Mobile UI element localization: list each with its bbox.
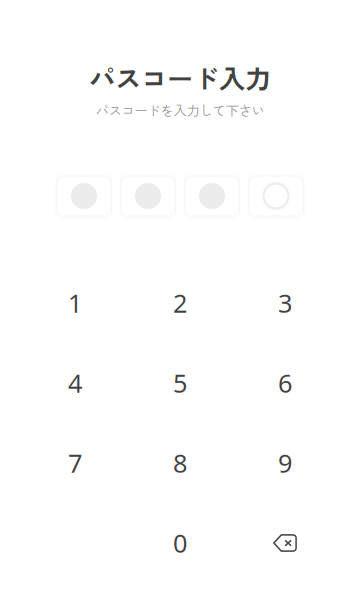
- button[interactable]: 1: [22, 263, 127, 343]
- button[interactable]: 2: [127, 263, 232, 343]
- button[interactable]: Delete: [232, 503, 337, 583]
- staticText: 9: [278, 446, 292, 480]
- button[interactable]: 8: [127, 423, 232, 503]
- staticText: パスコードを入力して下さい: [95, 100, 264, 120]
- button[interactable]: 9: [232, 423, 337, 503]
- staticText: 3: [278, 286, 292, 320]
- staticText: パスコード入力: [89, 58, 271, 96]
- button[interactable]: 6: [232, 343, 337, 423]
- staticText: 5: [173, 366, 187, 400]
- button[interactable]: 5: [127, 343, 232, 423]
- button[interactable]: 3: [232, 263, 337, 343]
- staticText: 7: [68, 446, 82, 480]
- button[interactable]: 7: [22, 423, 127, 503]
- staticText: 6: [278, 366, 292, 400]
- button[interactable]: 4: [22, 343, 127, 423]
- staticText: 8: [173, 446, 187, 480]
- staticText: 4: [68, 366, 82, 400]
- staticText: 2: [173, 286, 187, 320]
- staticText: 0: [173, 526, 187, 560]
- button[interactable]: 0: [127, 503, 232, 583]
- staticText: 1: [68, 286, 82, 320]
